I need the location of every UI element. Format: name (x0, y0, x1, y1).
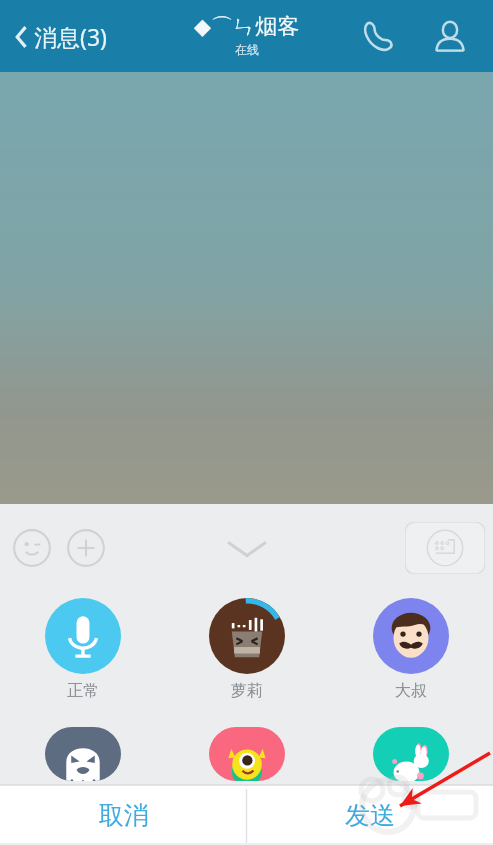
button[interactable]: Add attachment (62, 524, 110, 572)
button[interactable]: Emoji (8, 524, 56, 572)
button[interactable]: Collapse panel (215, 526, 279, 570)
button[interactable]: Contact profile (427, 13, 473, 59)
button[interactable]: 萝莉 (165, 594, 329, 705)
button[interactable]: 搞怪 (165, 723, 329, 785)
staticText: 在线 (235, 42, 259, 57)
staticText: 取消 (99, 800, 149, 831)
staticText: 发送 (345, 800, 395, 831)
button[interactable]: 正常 (0, 594, 165, 705)
button[interactable]: 惊悚 (0, 723, 165, 785)
button[interactable]: 取消 (0, 785, 247, 845)
button[interactable]: 大叔 (329, 594, 493, 705)
button[interactable]: 空灵 (329, 723, 493, 785)
button[interactable]: 发送 (246, 785, 493, 845)
staticText: ◆⌒ㄣ烟客 (194, 13, 300, 41)
button[interactable]: Keyboard (405, 522, 485, 574)
staticText: 正常 (67, 681, 99, 701)
staticText: 大叔 (395, 681, 427, 701)
button[interactable]: 消息(3) (8, 13, 113, 60)
staticText: 萝莉 (231, 681, 263, 701)
staticText: 消息(3) (34, 21, 107, 52)
button[interactable]: Voice call (355, 13, 401, 59)
